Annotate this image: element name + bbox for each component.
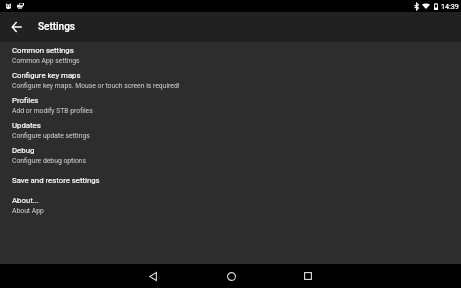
staticText: 14:39: [441, 2, 459, 10]
staticText: About...: [12, 196, 39, 205]
button[interactable]: Common settings: [0, 43, 461, 68]
button[interactable]: Updates: [0, 118, 461, 143]
staticText: Configure update settings: [12, 132, 90, 140]
button[interactable]: Profiles: [0, 93, 461, 118]
staticText: Profiles: [12, 96, 39, 105]
button[interactable]: About...: [0, 193, 461, 218]
button[interactable]: Navigate up: [0, 12, 32, 42]
staticText: Save and restore settings: [12, 176, 100, 185]
button[interactable]: Save and restore settings: [0, 168, 461, 193]
staticText: Debug: [12, 146, 35, 155]
button[interactable]: Home: [213, 264, 249, 288]
staticText: Common settings: [12, 46, 74, 55]
button[interactable]: Debug: [0, 143, 461, 168]
staticText: Configure key maps: [12, 71, 81, 80]
button[interactable]: Recent apps: [290, 264, 326, 288]
staticText: Configure key maps. Mouse or touch scree…: [12, 82, 180, 90]
staticText: About App: [12, 207, 44, 215]
button[interactable]: Configure key maps: [0, 68, 461, 93]
staticText: Settings: [38, 21, 76, 33]
staticText: Configure debug options: [12, 157, 87, 165]
button[interactable]: Back: [135, 264, 171, 288]
staticText: Add or modify STB profiles: [12, 107, 93, 115]
staticText: Updates: [12, 121, 41, 130]
staticText: Common App settings: [12, 57, 80, 65]
